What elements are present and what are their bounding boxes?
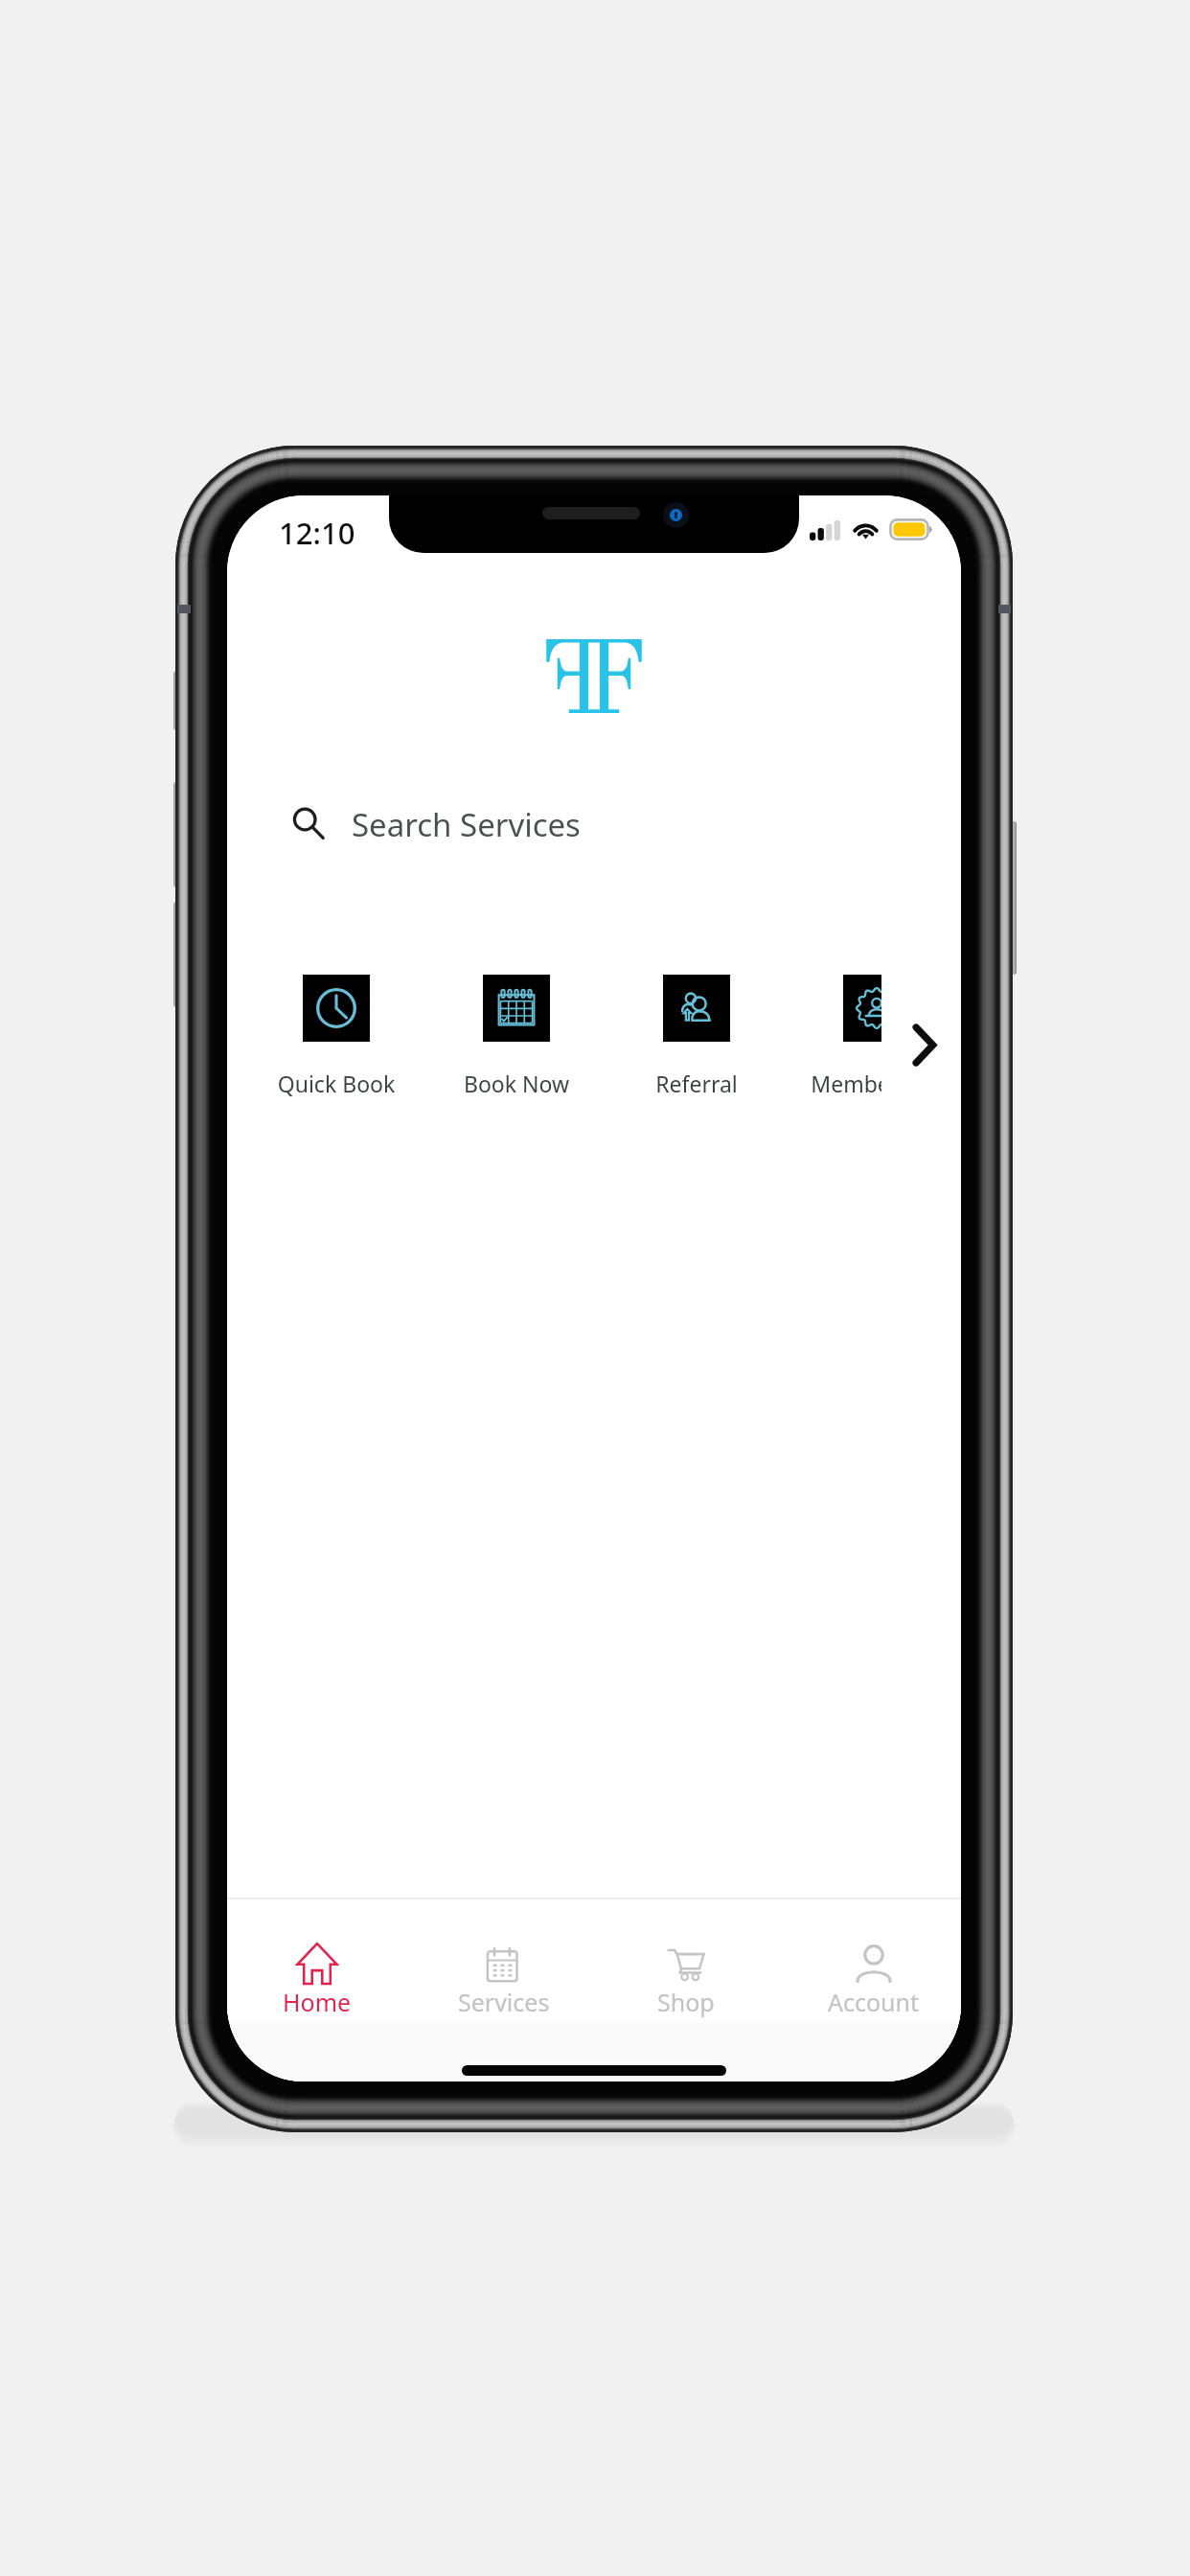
staticText: Book Now [397,1069,636,1098]
button[interactable]: Services [423,1899,585,2018]
button[interactable]: Quick Book [227,975,456,1118]
button[interactable]: Home [236,1899,399,2018]
staticText: Search Services [352,803,581,846]
staticText: Services [458,1986,550,2018]
button[interactable]: Shop [605,1899,767,2018]
staticText: Quick Book [227,1069,456,1098]
button[interactable]: Next services [896,1017,951,1072]
staticText: Referral [577,1069,816,1098]
staticText: Shop [657,1986,715,2018]
staticText: Home [283,1986,352,2018]
button[interactable]: Book Now [397,975,636,1118]
button[interactable]: Referral [577,975,816,1118]
button[interactable]: Membership [757,975,881,1118]
button[interactable]: Search Services [227,789,961,860]
staticText: 12:10 [279,513,355,553]
button[interactable]: Account [792,1899,955,2018]
staticText: Membership [757,1069,881,1098]
staticText: Account [828,1986,920,2018]
